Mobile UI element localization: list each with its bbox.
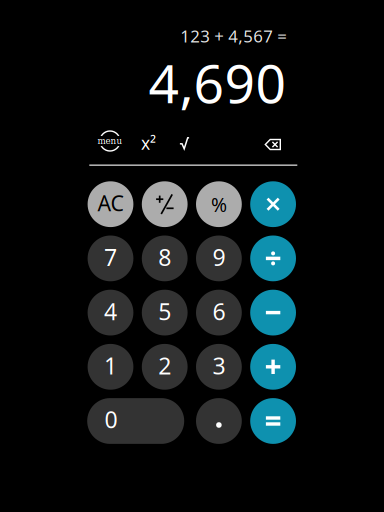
button[interactable]: Minus (250, 290, 296, 335)
button[interactable]: Delete (260, 133, 286, 155)
button[interactable]: 7 (88, 235, 133, 281)
button[interactable]: 5 (142, 290, 188, 335)
button[interactable]: 8 (142, 235, 188, 281)
staticText: menu (97, 136, 122, 146)
button[interactable]: 2 (142, 344, 188, 390)
button[interactable]: Multiply (250, 181, 296, 227)
button[interactable]: Plus minus (142, 181, 188, 227)
staticText: x² (141, 131, 156, 154)
button[interactable]: Divide (250, 235, 296, 281)
staticText: 4 (104, 296, 117, 327)
button[interactable]: 3 (196, 344, 242, 390)
staticText: 0 (104, 403, 117, 435)
staticText: % (211, 191, 227, 217)
staticText: 4,690 (148, 47, 286, 118)
button[interactable]: 4 (88, 290, 133, 335)
staticText: 5 (158, 296, 171, 327)
button[interactable]: % (196, 181, 242, 227)
button[interactable]: 0 (87, 398, 184, 444)
button[interactable]: AC (88, 181, 133, 227)
staticText: 123 + 4,567 = (180, 25, 287, 47)
staticText: 1 (104, 350, 117, 381)
staticText: 7 (104, 241, 117, 273)
button[interactable]: Equals (250, 398, 296, 444)
staticText: 2 (158, 350, 171, 381)
staticText: 3 (212, 350, 225, 381)
staticText: AC (97, 188, 123, 217)
button[interactable]: 6 (196, 290, 242, 335)
button[interactable]: Menu (95, 130, 125, 152)
staticText: 9 (212, 241, 225, 273)
staticText: 6 (212, 296, 225, 327)
button[interactable]: Plus (250, 344, 296, 390)
staticText: 8 (158, 241, 171, 273)
button[interactable]: Decimal point (196, 398, 242, 444)
button[interactable]: Square (135, 132, 161, 154)
button[interactable]: 1 (88, 344, 133, 390)
button[interactable]: 9 (196, 235, 242, 281)
button[interactable]: Square root (172, 132, 196, 154)
